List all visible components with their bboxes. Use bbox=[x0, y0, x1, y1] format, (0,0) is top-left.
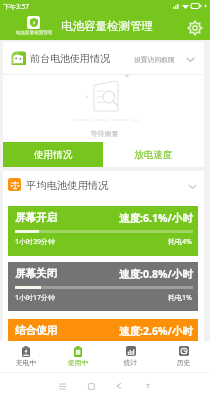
button[interactable]: App icon bbox=[27, 16, 40, 29]
staticText: 统计 bbox=[104, 358, 157, 367]
staticText: 使用中 bbox=[52, 358, 104, 367]
staticText: 屏幕开启 bbox=[15, 211, 57, 224]
button[interactable]: 使用情况 bbox=[3, 142, 103, 167]
staticText: 前台电池使用情况 bbox=[30, 52, 110, 65]
button[interactable]: 平均电池使用情况 bbox=[3, 171, 204, 198]
staticText: 速度:2.6%/小时 bbox=[119, 324, 193, 338]
staticText: 下午3:57 bbox=[3, 2, 29, 11]
staticText: 速度:6.1%/小时 bbox=[119, 211, 193, 225]
staticText: 耗电4% bbox=[168, 237, 192, 247]
button[interactable]: 使用中 bbox=[52, 341, 104, 372]
staticText: 耗电1% bbox=[168, 293, 192, 303]
button[interactable]: Home bbox=[84, 379, 98, 393]
staticText: 1小时17分钟 bbox=[15, 293, 56, 303]
staticText: 使用情况 bbox=[34, 149, 73, 161]
button[interactable]: Menu bbox=[55, 379, 69, 393]
button[interactable]: 历史 bbox=[157, 341, 210, 372]
button[interactable]: Settings bbox=[186, 19, 203, 36]
button[interactable]: 放电速度 bbox=[103, 142, 204, 167]
staticText: 速度:0.8%/小时 bbox=[119, 267, 193, 281]
staticText: 历史 bbox=[157, 358, 210, 367]
button[interactable]: 屏幕开启 bbox=[8, 206, 198, 256]
button[interactable]: 结合使用 bbox=[8, 319, 198, 369]
staticText: 设置访问权限 bbox=[134, 55, 175, 64]
staticText: 充电中 bbox=[0, 358, 52, 367]
staticText: 等待测量 bbox=[4, 129, 205, 138]
staticText: 1小时39分钟 bbox=[15, 237, 56, 247]
button[interactable]: 前台电池使用情况 bbox=[3, 42, 204, 73]
staticText: 平均电池使用情况 bbox=[26, 179, 109, 192]
staticText: 放电速度 bbox=[134, 149, 173, 161]
button[interactable]: 统计 bbox=[104, 341, 157, 372]
button[interactable]: 充电中 bbox=[0, 341, 52, 372]
staticText: 结合使用 bbox=[15, 324, 57, 337]
staticText: 屏幕关闭 bbox=[15, 267, 57, 280]
staticText: 电池容量检测管理 bbox=[61, 19, 153, 33]
button[interactable]: 屏幕关闭 bbox=[8, 262, 198, 311]
staticText: 电池容量检测管理 bbox=[9, 30, 59, 36]
button[interactable]: Back bbox=[112, 379, 126, 393]
button[interactable]: Pin bbox=[141, 379, 155, 393]
